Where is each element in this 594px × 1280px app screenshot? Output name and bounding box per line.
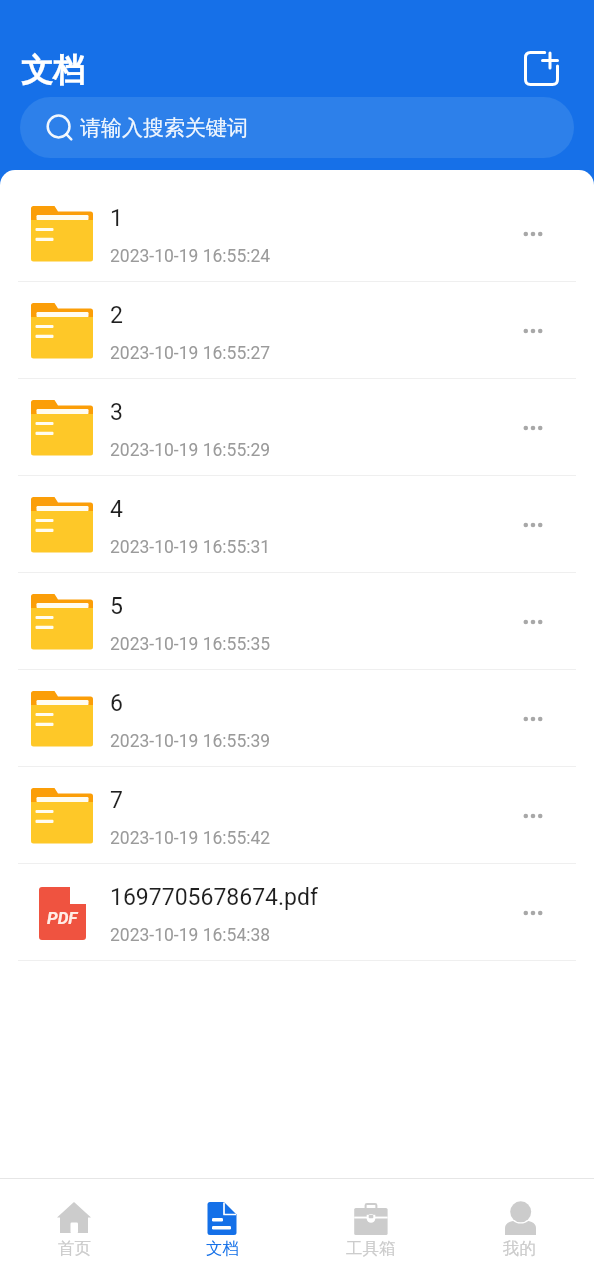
button[interactable]: More options [496, 488, 570, 562]
staticText: 文档 [206, 1238, 239, 1259]
button[interactable]: 7 [0, 767, 594, 864]
staticText: 4 [110, 496, 123, 523]
staticText: 5 [110, 593, 123, 620]
staticText: 2023-10-19 16:55:31 [110, 537, 271, 558]
button[interactable]: New document [514, 41, 574, 101]
staticText: 2023-10-19 16:54:38 [110, 925, 271, 946]
staticText: 2023-10-19 16:55:35 [110, 634, 271, 655]
button[interactable]: More options [496, 876, 570, 950]
button[interactable]: More options [496, 197, 570, 271]
staticText: 2023-10-19 16:55:39 [110, 731, 271, 752]
button[interactable]: More options [496, 585, 570, 659]
button[interactable]: 我的 [445, 1179, 594, 1280]
staticText: 工具箱 [346, 1238, 396, 1259]
button[interactable]: 3 [0, 379, 594, 476]
staticText: 2023-10-19 16:55:42 [110, 828, 271, 849]
staticText: PDF [47, 908, 78, 928]
staticText: 2023-10-19 16:55:27 [110, 343, 271, 364]
button[interactable]: 4 [0, 476, 594, 573]
staticText: 请输入搜索关键词 [80, 115, 248, 141]
button[interactable]: 文档 [148, 1179, 296, 1280]
button[interactable]: PDF [0, 864, 594, 961]
button[interactable]: 5 [0, 573, 594, 670]
staticText: 2023-10-19 16:55:29 [110, 440, 271, 461]
button[interactable]: More options [496, 391, 570, 465]
staticText: 6 [110, 690, 123, 717]
staticText: 1697705678674.pdf [110, 884, 318, 911]
staticText: 文档 [21, 50, 85, 90]
staticText: 1 [110, 205, 123, 232]
staticText: 2023-10-19 16:55:24 [110, 246, 271, 267]
button[interactable]: 请输入搜索关键词 [20, 97, 574, 158]
button[interactable]: 首页 [0, 1179, 148, 1280]
button[interactable]: 2 [0, 282, 594, 379]
staticText: 3 [110, 399, 123, 426]
button[interactable]: More options [496, 294, 570, 368]
staticText: 我的 [503, 1238, 536, 1259]
button[interactable]: More options [496, 779, 570, 853]
staticText: 首页 [58, 1238, 91, 1259]
button[interactable]: 1 [0, 185, 594, 282]
button[interactable]: 工具箱 [296, 1179, 445, 1280]
button[interactable]: More options [496, 682, 570, 756]
staticText: 2 [110, 302, 123, 329]
button[interactable]: 6 [0, 670, 594, 767]
staticText: 7 [110, 787, 123, 814]
